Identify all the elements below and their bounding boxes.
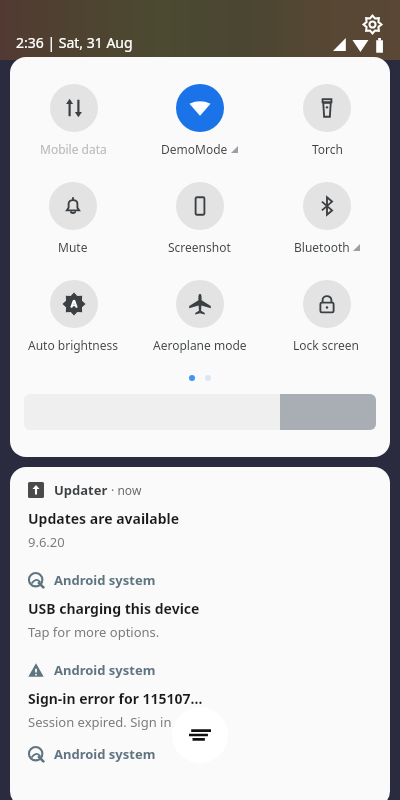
button[interactable]: Mobile data	[38, 84, 109, 157]
staticText: DemoMode	[161, 141, 228, 157]
staticText: Lock screen	[293, 337, 360, 353]
button[interactable]	[24, 394, 376, 430]
staticText: 2:36 | Sat, 31 Aug	[16, 33, 133, 52]
staticText: Android system	[54, 745, 156, 763]
staticText: 9.6.20	[28, 533, 65, 551]
staticText: Torch	[312, 141, 343, 157]
button[interactable]: Android system	[10, 737, 390, 763]
staticText: Session expired. Sign in	[28, 713, 172, 731]
button[interactable]: Auto brightness	[26, 280, 121, 353]
staticText: Android system	[54, 571, 156, 589]
staticText: Updates are available	[28, 509, 180, 528]
staticText: Auto brightness	[28, 337, 119, 353]
staticText: Mobile data	[40, 141, 107, 157]
button[interactable]: Torch	[301, 84, 353, 157]
staticText: Android system	[54, 661, 156, 679]
staticText: USB charging this device	[28, 599, 200, 618]
staticText: Aeroplane mode	[153, 337, 247, 353]
button[interactable]: Aeroplane mode	[151, 280, 249, 353]
button[interactable]: Mute	[47, 182, 99, 255]
button[interactable]: Updater	[10, 467, 390, 557]
staticText: Updater	[54, 481, 108, 499]
button[interactable]: Bluetooth	[292, 182, 362, 255]
button[interactable]: Manage notifications	[172, 707, 228, 763]
staticText: Mute	[58, 239, 88, 255]
staticText: · now	[108, 482, 142, 498]
button[interactable]: Screenshot	[166, 182, 233, 255]
button[interactable]: DemoMode	[159, 84, 240, 157]
staticText: Bluetooth	[294, 239, 350, 255]
button[interactable]: Android system	[10, 647, 390, 737]
button[interactable]: Android system	[10, 557, 390, 647]
button[interactable]: Settings	[360, 12, 384, 36]
staticText: Sign-in error for 115107…	[28, 689, 203, 708]
staticText: Screenshot	[168, 239, 231, 255]
staticText: Tap for more options.	[28, 623, 160, 641]
button[interactable]: Lock screen	[291, 280, 362, 353]
